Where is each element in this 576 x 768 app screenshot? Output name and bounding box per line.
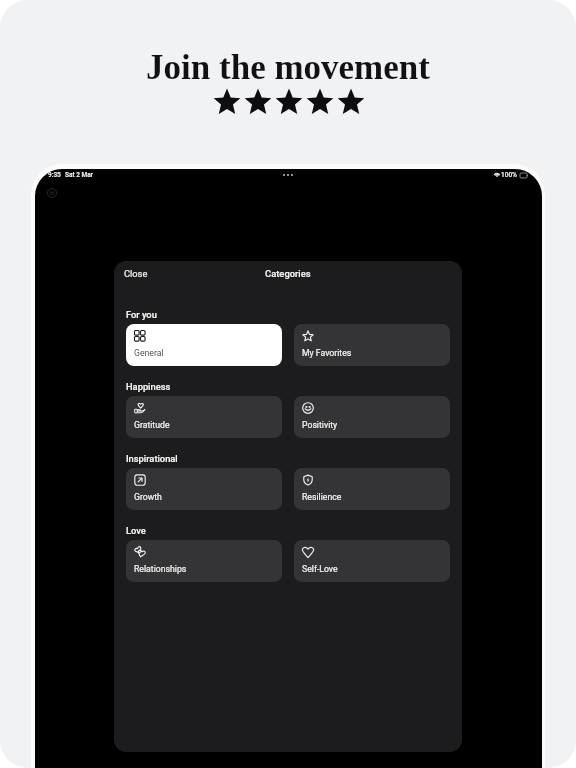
staticText: Sat 2 Mar — [65, 171, 94, 179]
staticText: Categories — [265, 268, 311, 279]
staticText: My Favorites — [302, 348, 352, 358]
staticText: Close — [124, 268, 148, 279]
staticText: Resilience — [302, 492, 342, 502]
button[interactable]: Close — [118, 262, 154, 285]
staticText: Growth — [134, 492, 162, 502]
button[interactable]: Growth — [126, 468, 282, 510]
button[interactable]: Positivity — [294, 396, 450, 438]
staticText: For you — [126, 309, 157, 320]
staticText: Love — [126, 525, 146, 536]
staticText: 100% — [501, 171, 517, 179]
staticText: Join the movement — [0, 48, 576, 87]
staticText: Inspirational — [126, 453, 178, 464]
other: Menu — [47, 188, 57, 198]
staticText: General — [134, 348, 164, 358]
button[interactable]: General — [126, 324, 282, 366]
button[interactable]: Gratitude — [126, 396, 282, 438]
button[interactable]: Relationships — [126, 540, 282, 582]
button[interactable]: My Favorites — [294, 324, 450, 366]
staticText: Relationships — [134, 564, 187, 574]
staticText: Positivity — [302, 420, 338, 430]
staticText: Self-Love — [302, 564, 338, 574]
staticText: 9:35 — [48, 171, 61, 179]
button[interactable]: Self-Love — [294, 540, 450, 582]
button[interactable]: Resilience — [294, 468, 450, 510]
staticText: Happiness — [126, 381, 171, 392]
staticText: Gratitude — [134, 420, 170, 430]
